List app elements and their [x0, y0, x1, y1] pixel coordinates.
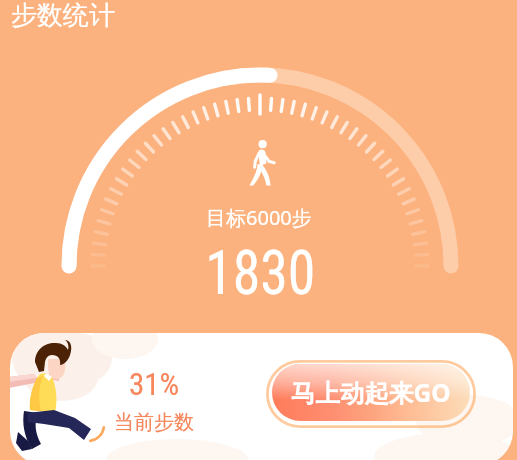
staticText: 1830: [205, 236, 316, 309]
staticText: 步数统计: [11, 0, 115, 32]
staticText: 目标6000步: [206, 204, 312, 231]
button[interactable]: 马上动起来GO: [266, 360, 476, 428]
staticText: 马上动起来GO: [291, 376, 451, 409]
staticText: 31%: [129, 366, 180, 402]
button[interactable]: 31%: [10, 333, 513, 460]
other: Walking: [249, 139, 275, 191]
staticText: 当前步数: [114, 410, 194, 435]
